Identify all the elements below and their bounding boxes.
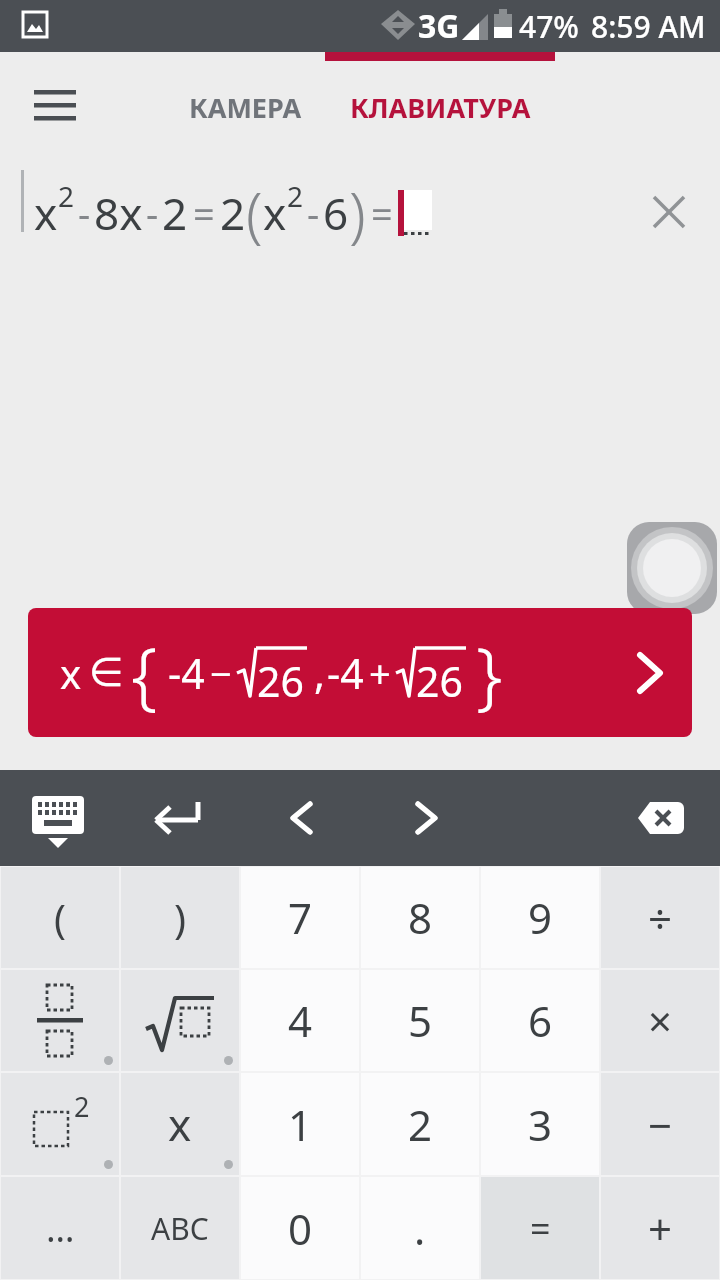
staticText: ( [246,172,263,254]
staticText: 1 [288,1096,313,1153]
button[interactable] [636,800,688,840]
staticText: 3 [528,1096,553,1153]
staticText: x [34,183,58,243]
button[interactable] [408,802,444,838]
staticText: - [307,187,320,239]
staticText: 3G [418,4,460,48]
staticText: - [146,187,159,239]
staticText: -4 [168,645,205,701]
staticText: 8:59 AM [591,6,706,47]
staticText: 2 [58,177,75,215]
staticText: 6 [323,183,349,243]
staticText: 26 [416,653,463,702]
staticText: 7 [288,889,313,946]
button[interactable] [30,792,90,852]
button[interactable]: 2 [361,1073,479,1175]
button[interactable] [627,522,717,614]
staticText: 2 [74,1088,90,1125]
staticText: 47% [519,6,579,47]
button[interactable]: 3 [481,1073,599,1175]
staticText: − [648,1096,673,1153]
staticText: 0 [288,1200,313,1257]
button[interactable] [652,195,688,231]
button[interactable]: КЛАВИАТУРА [340,82,540,132]
button[interactable]: КАМЕРА [170,82,320,132]
staticText: 26 [257,653,304,702]
button[interactable]: = [481,1177,599,1279]
staticText: 5 [408,992,433,1049]
staticText: 2 [162,183,188,243]
button[interactable]: . [361,1177,479,1279]
staticText: 2 [408,1096,433,1153]
button[interactable]: 6 [481,970,599,1071]
button[interactable]: 7 [241,867,359,968]
staticText: ( [54,891,66,945]
button[interactable]: 1 [241,1073,359,1175]
staticText: 2 [287,177,304,215]
staticText: , [314,645,325,701]
button[interactable]: + [601,1177,719,1279]
staticText: = [371,187,393,239]
button[interactable]: × [601,970,719,1071]
staticText: КАМЕРА [189,89,302,126]
button[interactable]: … [1,1177,119,1279]
button[interactable]: ABC [121,1177,239,1279]
staticText: … [46,1204,75,1253]
staticText: = [193,187,215,239]
staticText: КЛАВИАТУРА [350,89,531,126]
button[interactable]: − [601,1073,719,1175]
button[interactable] [286,802,322,838]
staticText: = [530,1204,551,1253]
staticText: × [648,992,673,1049]
staticText: ÷ [648,889,673,946]
staticText: - [78,187,91,239]
staticText: ABC [151,1208,209,1249]
button[interactable]: ÷ [601,867,719,968]
staticText: 8 [408,889,433,946]
staticText: } [476,622,503,723]
button[interactable]: 2 [1,1073,119,1175]
button[interactable] [1,970,119,1071]
staticText: -4 [327,645,364,701]
staticText: 9 [528,889,553,946]
button[interactable]: 9 [481,867,599,968]
staticText: x [60,646,82,700]
button[interactable]: 0 [241,1177,359,1279]
staticText: 4 [288,992,313,1049]
button[interactable] [121,970,239,1071]
button[interactable]: x [121,1073,239,1175]
staticText: ) [349,172,366,254]
staticText: { [131,622,158,723]
button[interactable]: ) [121,867,239,968]
staticText: ∈ [89,649,124,696]
button[interactable]: ( [1,867,119,968]
button[interactable]: 8 [361,867,479,968]
staticText: 8x [94,183,143,243]
button[interactable]: 5 [361,970,479,1071]
button[interactable]: x [28,608,692,737]
staticText: ) [174,891,186,945]
staticText: x [263,183,287,243]
staticText: − [210,647,232,699]
button[interactable] [34,90,78,124]
staticText: 6 [528,992,553,1049]
staticText: x [168,1094,192,1154]
staticText: . [414,1200,426,1257]
button[interactable] [152,794,204,846]
staticText: + [369,647,391,699]
staticText: 2 [220,183,246,243]
staticText: + [648,1200,673,1257]
button[interactable]: 4 [241,970,359,1071]
